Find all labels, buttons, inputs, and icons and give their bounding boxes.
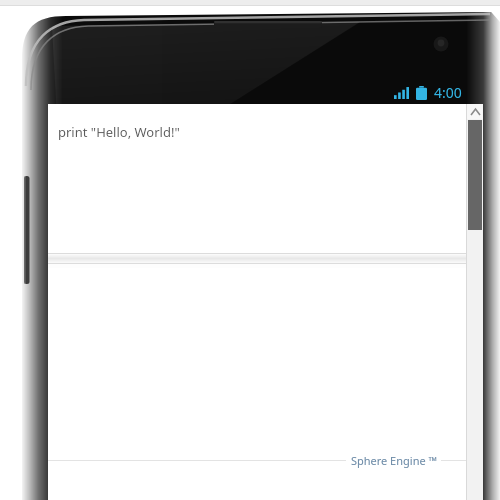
button[interactable]: Sphere Engine ™ <box>48 268 483 472</box>
staticText: 4:00 <box>434 83 462 102</box>
button[interactable]: print "Hello, World!" <box>48 104 483 253</box>
staticText: Sphere Engine ™ <box>350 453 437 468</box>
staticText: print "Hello, World!" <box>58 123 180 141</box>
button[interactable]: Scroll up <box>467 104 483 119</box>
